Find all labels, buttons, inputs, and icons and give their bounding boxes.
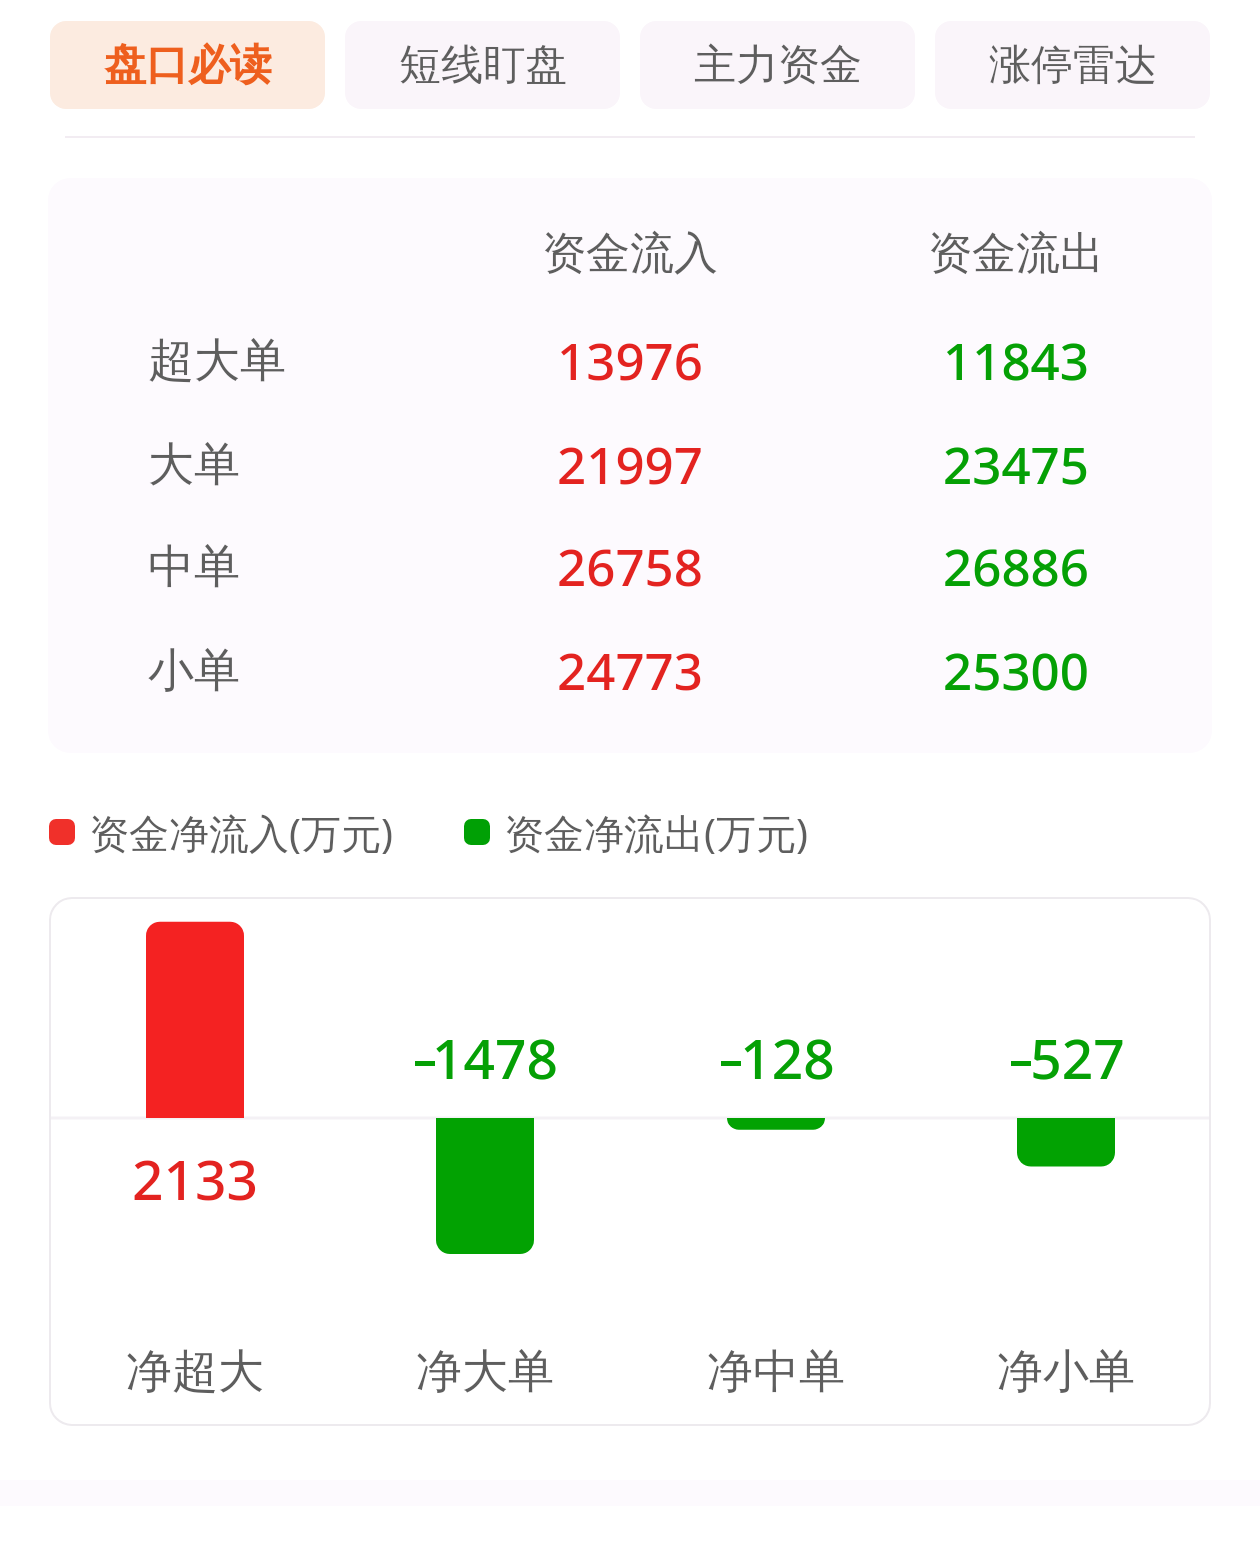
staticText: 24773 [557, 635, 703, 699]
button[interactable]: 涨停雷达 [935, 21, 1210, 109]
staticText: 资金净流入(万元) [89, 805, 393, 860]
staticText: 23475 [943, 429, 1089, 493]
staticText: 短线盯盘 [399, 39, 567, 92]
staticText: 净小单 [997, 1343, 1135, 1401]
staticText: 净中单 [707, 1343, 845, 1401]
staticText: 小单 [148, 642, 240, 700]
button[interactable]: 短线盯盘 [345, 21, 620, 109]
staticText: 资金流出 [928, 226, 1104, 281]
staticText: 128 [740, 1020, 835, 1095]
staticText: 26758 [557, 531, 703, 595]
other: 资金净流入流出柱状图 [50, 898, 1210, 1425]
staticText: 11843 [943, 325, 1089, 389]
staticText: 涨停雷达 [989, 39, 1157, 92]
staticText: 资金净流出(万元) [504, 805, 808, 860]
staticText: 主力资金 [694, 39, 862, 92]
button[interactable]: 盘口必读 [50, 21, 325, 109]
staticText: 净大单 [416, 1343, 554, 1401]
staticText: 1478 [432, 1020, 558, 1095]
staticText: 21997 [557, 429, 703, 493]
staticText: 2133 [132, 1141, 258, 1216]
staticText: 中单 [148, 538, 240, 596]
staticText: 13976 [557, 325, 703, 389]
staticText: 26886 [943, 531, 1089, 595]
button[interactable]: 主力资金 [640, 21, 915, 109]
staticText: 净超大 [126, 1343, 264, 1401]
staticText: 527 [1030, 1020, 1125, 1095]
staticText: 资金流入 [542, 226, 718, 281]
staticText: 超大单 [148, 332, 286, 390]
staticText: 大单 [148, 436, 240, 494]
staticText: 25300 [943, 635, 1089, 699]
staticText: 盘口必读 [104, 39, 272, 92]
